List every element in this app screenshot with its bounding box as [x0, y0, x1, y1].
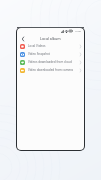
- staticText: 12:30: [75, 30, 81, 33]
- staticText: Local Videos: [28, 44, 78, 48]
- staticText: Videos downloaded from cloud: [28, 60, 78, 64]
- staticText: Video Snapshot: [28, 52, 78, 56]
- button[interactable]: Local Videos: [17, 42, 84, 50]
- button[interactable]: Videos downloaded from cloud: [17, 58, 84, 66]
- staticText: Local album: [40, 36, 61, 41]
- staticText: Video downloaded from camera: [28, 68, 78, 72]
- button[interactable]: Video Snapshot: [17, 50, 84, 58]
- button[interactable]: Back: [19, 35, 26, 42]
- button[interactable]: Video downloaded from camera: [17, 66, 84, 74]
